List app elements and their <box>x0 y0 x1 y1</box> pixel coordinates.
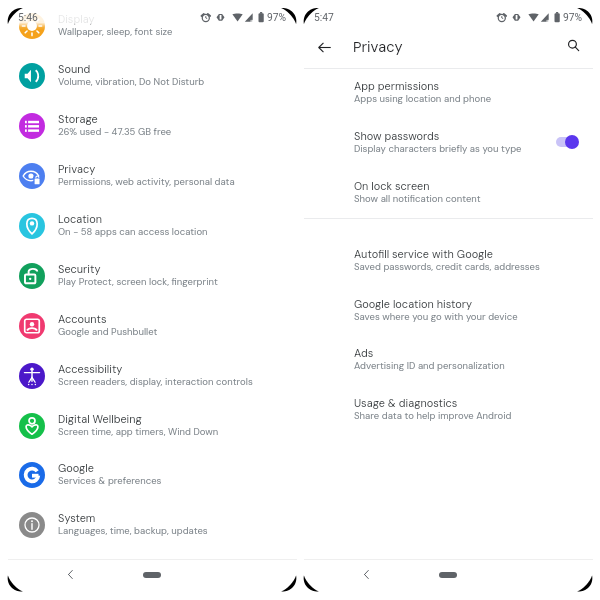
staticText: Sound <box>58 62 91 76</box>
staticText: Google <box>58 461 94 475</box>
staticText: Permissions, web activity, personal data <box>58 176 235 188</box>
button[interactable]: System <box>0 501 304 551</box>
button[interactable]: App permissions <box>296 69 600 119</box>
staticText: Security <box>58 262 101 276</box>
staticText: Show all notification content <box>354 193 481 205</box>
button[interactable]: Google <box>0 451 304 501</box>
staticText: Show passwords <box>354 129 440 143</box>
staticText: Display characters briefly as you type <box>354 143 522 155</box>
button[interactable]: Back <box>312 35 337 60</box>
staticText: Screen time, app timers, Wind Down <box>58 426 219 438</box>
button[interactable]: Google location history <box>296 287 600 337</box>
staticText: 5:46 <box>18 11 38 23</box>
staticText: Accessibility <box>58 362 123 376</box>
button[interactable]: Location <box>0 202 304 252</box>
button[interactable]: Show passwords <box>296 119 600 169</box>
staticText: Languages, time, backup, updates <box>58 525 208 537</box>
staticText: Play Protect, screen lock, fingerprint <box>58 276 218 288</box>
button[interactable]: Back <box>60 564 81 585</box>
button[interactable]: Back <box>356 564 377 585</box>
staticText: Ads <box>354 346 374 360</box>
staticText: 26% used - 47.35 GB free <box>58 126 172 138</box>
staticText: Saved passwords, credit cards, addresses <box>354 261 540 273</box>
button[interactable]: Digital Wellbeing <box>0 402 304 452</box>
button[interactable]: Privacy <box>0 152 304 202</box>
button[interactable]: Accounts <box>0 302 304 352</box>
staticText: Volume, vibration, Do Not Disturb <box>58 76 205 88</box>
button[interactable]: Security <box>0 252 304 302</box>
staticText: Usage & diagnostics <box>354 396 458 410</box>
staticText: 5:47 <box>314 11 334 23</box>
button[interactable]: Ads <box>296 336 600 386</box>
button[interactable]: Sound <box>0 52 304 102</box>
staticText: Accounts <box>58 312 107 326</box>
staticText: 97% <box>563 11 583 23</box>
staticText: Display <box>58 12 95 26</box>
staticText: Google location history <box>354 297 473 311</box>
staticText: Wallpaper, sleep, font size <box>58 26 173 38</box>
staticText: System <box>58 511 96 525</box>
staticText: Advertising ID and personalization <box>354 360 505 372</box>
button[interactable]: Search <box>561 33 586 58</box>
button[interactable]: Accessibility <box>0 352 304 402</box>
button[interactable]: Usage & diagnostics <box>296 386 600 436</box>
staticText: Apps using location and phone <box>354 93 492 105</box>
staticText: Autofill service with Google <box>354 247 493 261</box>
staticText: On lock screen <box>354 179 430 193</box>
staticText: On - 58 apps can access location <box>58 226 208 238</box>
staticText: Storage <box>58 112 98 126</box>
staticText: Services & preferences <box>58 475 162 487</box>
button[interactable]: Home <box>143 572 161 578</box>
button[interactable]: Home <box>439 572 457 578</box>
button[interactable]: Show passwords <box>549 131 583 153</box>
staticText: Saves where you go with your device <box>354 311 518 323</box>
button[interactable]: Autofill service with Google <box>296 237 600 287</box>
staticText: App permissions <box>354 79 440 93</box>
staticText: Share data to help improve Android <box>354 410 512 422</box>
staticText: Screen readers, display, interaction con… <box>58 376 253 388</box>
staticText: 97% <box>267 11 287 23</box>
staticText: Digital Wellbeing <box>58 412 142 426</box>
staticText: Privacy <box>353 38 403 57</box>
staticText: Privacy <box>58 162 96 176</box>
staticText: Google and Pushbullet <box>58 326 158 338</box>
button[interactable]: On lock screen <box>296 169 600 219</box>
button[interactable]: Storage <box>0 102 304 152</box>
button[interactable]: Display <box>0 2 304 52</box>
staticText: Location <box>58 212 103 226</box>
